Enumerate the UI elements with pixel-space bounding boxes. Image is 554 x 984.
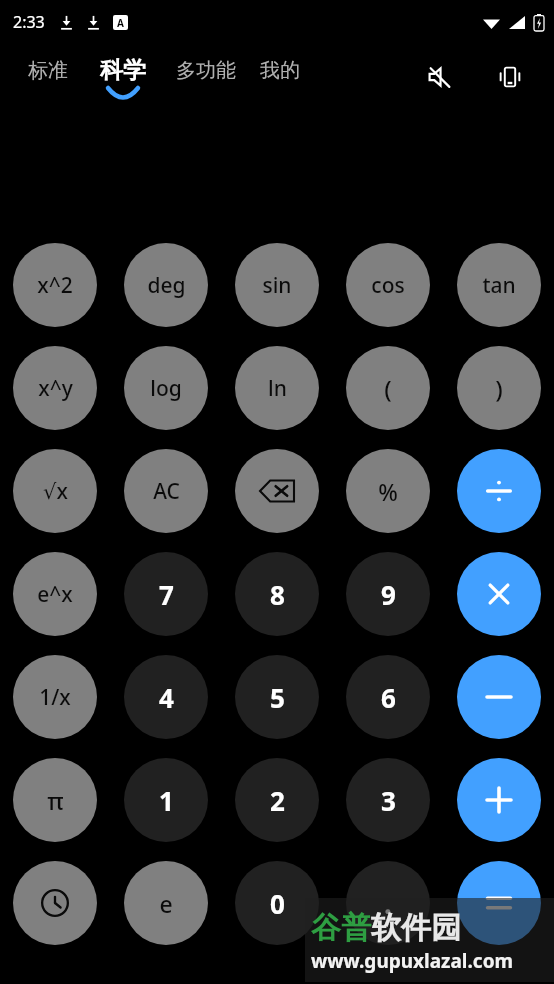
staticText: log	[150, 374, 182, 403]
button[interactable]: x^y	[13, 346, 97, 430]
button[interactable]: ln	[235, 346, 319, 430]
button[interactable]: Subtract	[457, 655, 541, 739]
button[interactable]: √x	[13, 449, 97, 533]
staticText: (	[384, 372, 392, 405]
button[interactable]: Backspace	[235, 449, 319, 533]
button[interactable]: Equals	[457, 861, 541, 945]
staticText: π	[47, 784, 64, 817]
staticText: 多功能	[176, 58, 236, 83]
button[interactable]: π	[13, 758, 97, 842]
button[interactable]: Multiply	[457, 552, 541, 636]
staticText: 3	[381, 783, 396, 818]
staticText: 0	[270, 886, 285, 921]
button[interactable]: 标准	[26, 58, 70, 96]
button[interactable]: 5	[235, 655, 319, 739]
button[interactable]: tan	[457, 243, 541, 327]
staticText: sin	[262, 271, 292, 300]
staticText: 谷普	[311, 909, 371, 947]
button[interactable]: )	[457, 346, 541, 430]
staticText: 5	[270, 680, 285, 715]
staticText: %	[378, 476, 398, 507]
staticText: 9	[381, 577, 396, 612]
button[interactable]: 6	[346, 655, 430, 739]
button[interactable]: 1	[124, 758, 208, 842]
button[interactable]: 多功能	[174, 58, 238, 96]
staticText: ln	[268, 374, 287, 403]
button[interactable]: 3	[346, 758, 430, 842]
button[interactable]: AC	[124, 449, 208, 533]
button[interactable]: 8	[235, 552, 319, 636]
staticText: 4	[159, 680, 174, 715]
staticText: 8	[270, 577, 285, 612]
staticText: deg	[147, 271, 186, 300]
staticText: 标准	[28, 58, 68, 83]
button[interactable]: e	[124, 861, 208, 945]
staticText: x^y	[38, 374, 73, 403]
button[interactable]: Add	[457, 758, 541, 842]
button[interactable]: 4	[124, 655, 208, 739]
staticText: e	[159, 888, 173, 919]
button[interactable]: 我的	[258, 58, 302, 96]
button[interactable]: 1/x	[13, 655, 97, 739]
button[interactable]: x^2	[13, 243, 97, 327]
staticText: )	[495, 372, 503, 405]
staticText: 2	[270, 783, 285, 818]
staticText: 我的	[260, 58, 300, 83]
button[interactable]: cos	[346, 243, 430, 327]
button[interactable]: e^x	[13, 552, 97, 636]
button[interactable]: 0	[235, 861, 319, 945]
staticText: .	[384, 886, 392, 921]
button[interactable]: 7	[124, 552, 208, 636]
staticText: www.gupuxlazal.com	[311, 948, 514, 974]
staticText: 1/x	[39, 683, 71, 712]
button[interactable]: sin	[235, 243, 319, 327]
button[interactable]: Mute sound	[418, 55, 462, 99]
staticText: e^x	[37, 580, 73, 609]
staticText: √x	[43, 477, 68, 506]
button[interactable]: .	[346, 861, 430, 945]
staticText: 软件园	[371, 909, 461, 947]
button[interactable]: 科学	[98, 56, 148, 98]
button[interactable]: 9	[346, 552, 430, 636]
staticText: 科学	[100, 56, 146, 85]
button[interactable]: 2	[235, 758, 319, 842]
staticText: x^2	[37, 271, 73, 300]
button[interactable]: Divide	[457, 449, 541, 533]
staticText: cos	[371, 271, 405, 300]
button[interactable]: %	[346, 449, 430, 533]
staticText: A	[117, 16, 124, 30]
button[interactable]: log	[124, 346, 208, 430]
button[interactable]: deg	[124, 243, 208, 327]
staticText: 1	[159, 783, 174, 818]
button[interactable]: Vibrate	[488, 55, 532, 99]
staticText: 6	[381, 680, 396, 715]
staticText: 7	[159, 577, 174, 612]
staticText: AC	[153, 477, 180, 506]
button[interactable]: History	[13, 861, 97, 945]
staticText: 2:33	[13, 11, 45, 33]
button[interactable]: (	[346, 346, 430, 430]
staticText: tan	[482, 271, 516, 300]
